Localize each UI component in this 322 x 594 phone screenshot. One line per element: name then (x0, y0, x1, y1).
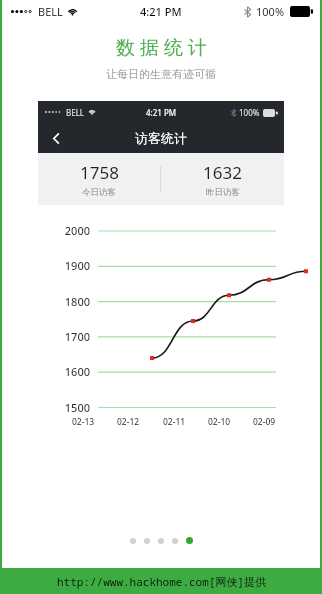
button[interactable]: Back (38, 123, 74, 153)
button[interactable]: 1632 (161, 153, 284, 205)
staticText: http://www.hackhome.com[网侠]提供 (57, 574, 266, 589)
staticText: BELL (38, 4, 63, 19)
staticText: 4:21 PM (140, 4, 182, 19)
staticText: 02-13 (72, 416, 95, 428)
staticText: 100% (256, 4, 285, 19)
staticText: 1700 (38, 329, 90, 344)
staticText: 1632 (203, 161, 242, 184)
button[interactable]: 1758 (38, 153, 160, 205)
staticText: 4:21 PM (146, 107, 177, 118)
staticText: 100% (239, 107, 260, 118)
staticText: BELL (66, 107, 85, 118)
staticText: 数 据 统 计 (116, 34, 207, 60)
button[interactable] (130, 538, 136, 544)
button[interactable] (144, 538, 150, 544)
staticText: 1600 (38, 364, 90, 379)
staticText: 2000 (38, 223, 90, 238)
button[interactable] (172, 538, 178, 544)
staticText: 02-12 (117, 416, 140, 428)
staticText: 02-09 (253, 416, 276, 428)
staticText: 1900 (38, 258, 90, 273)
staticText: 02-11 (163, 416, 186, 428)
staticText: 1758 (80, 161, 119, 184)
staticText: 02-10 (208, 416, 231, 428)
button[interactable] (158, 538, 164, 544)
staticText: 今日访客 (82, 187, 116, 198)
staticText: 访客统计 (135, 130, 187, 146)
staticText: 1500 (38, 400, 90, 415)
staticText: 让每日的生意有迹可循 (106, 67, 216, 81)
staticText: 1800 (38, 294, 90, 309)
staticText: 昨日访客 (206, 187, 240, 198)
button[interactable] (186, 537, 193, 544)
